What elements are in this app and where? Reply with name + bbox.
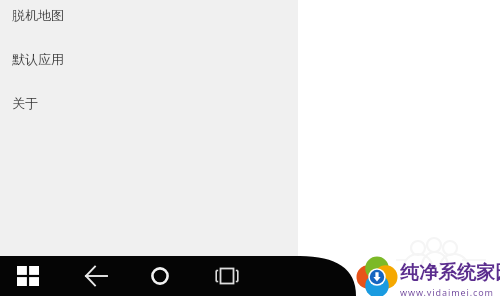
staticText: 纯净系统家园: [400, 261, 500, 285]
staticText: 默认应用: [12, 51, 64, 67]
staticText: 脱机地图: [12, 7, 64, 23]
button[interactable]: 默认应用: [0, 44, 298, 74]
button[interactable]: Recent apps: [209, 258, 245, 294]
button[interactable]: Back: [77, 258, 115, 294]
button[interactable]: Start: [10, 258, 46, 294]
staticText: 关于: [12, 95, 38, 111]
staticText: www.yidaimei.com: [400, 286, 494, 296]
button[interactable]: 脱机地图: [0, 0, 298, 30]
button[interactable]: Home: [142, 258, 178, 294]
button[interactable]: 关于: [0, 88, 298, 118]
